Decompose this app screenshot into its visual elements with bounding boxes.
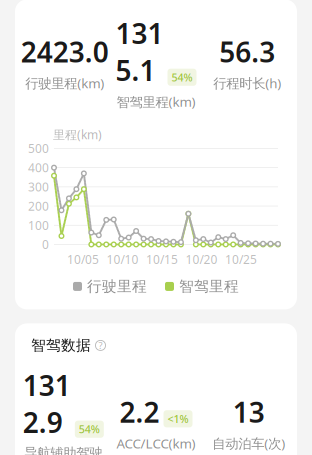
staticText: 智驾里程 bbox=[179, 277, 239, 295]
staticText: 10/05 bbox=[67, 251, 99, 267]
staticText: ? bbox=[98, 339, 102, 352]
staticText: 500 bbox=[28, 140, 49, 156]
staticText: 里程(km) bbox=[53, 126, 102, 142]
staticText: 行驶里程 bbox=[87, 277, 147, 295]
staticText: 导航辅助驾驶(km) bbox=[24, 445, 102, 455]
staticText: 10/25 bbox=[225, 251, 257, 267]
staticText: 10/20 bbox=[185, 251, 217, 267]
staticText: 56.3 bbox=[219, 33, 275, 70]
staticText: 1312.9 bbox=[23, 366, 71, 441]
staticText: 自动泊车(次) bbox=[212, 434, 285, 452]
staticText: 2423.0 bbox=[21, 33, 109, 70]
staticText: 智驾数据 bbox=[31, 336, 91, 354]
staticText: 1315.1 bbox=[115, 14, 163, 89]
staticText: 2.2 bbox=[119, 393, 159, 430]
staticText: 200 bbox=[28, 198, 49, 214]
staticText: 行驶里程(km) bbox=[25, 74, 104, 92]
staticText: 300 bbox=[28, 179, 49, 195]
staticText: 10/10 bbox=[106, 251, 138, 267]
staticText: 行程时长(h) bbox=[213, 74, 281, 92]
staticText: 0 bbox=[42, 236, 49, 252]
staticText: ACC/LCC(km) bbox=[116, 434, 195, 452]
staticText: 100 bbox=[28, 217, 49, 233]
staticText: 13 bbox=[233, 393, 265, 430]
staticText: 10/15 bbox=[146, 251, 178, 267]
staticText: <1% bbox=[167, 412, 188, 426]
staticText: 54% bbox=[79, 422, 100, 436]
staticText: 54% bbox=[171, 70, 192, 84]
staticText: 智驾里程(km) bbox=[116, 93, 195, 110]
staticText: 400 bbox=[28, 160, 49, 176]
